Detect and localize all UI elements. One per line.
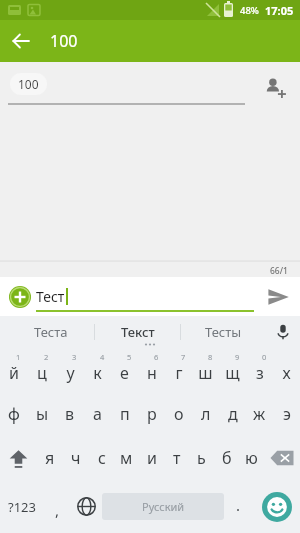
button[interactable]: о (165, 393, 192, 435)
button[interactable]: Add attachment (6, 283, 34, 311)
button[interactable]: 2 (28, 348, 56, 393)
staticText: ь (197, 447, 206, 469)
button[interactable]: Send (256, 277, 300, 316)
staticText: п (120, 403, 130, 425)
button[interactable]: б (214, 435, 239, 480)
staticText: 0 (262, 352, 267, 362)
button[interactable]: Текст (95, 316, 180, 348)
button[interactable]: 100 (10, 73, 47, 95)
button[interactable]: . (224, 480, 253, 533)
button[interactable]: ж (246, 393, 273, 435)
button[interactable]: 4 (84, 348, 111, 393)
staticText: б (222, 447, 232, 469)
button[interactable]: Change language (70, 480, 102, 533)
staticText: ?123 (8, 498, 36, 516)
button[interactable]: а (84, 393, 111, 435)
staticText: ж (253, 403, 266, 425)
button[interactable]: х (273, 348, 300, 393)
staticText: й (9, 362, 19, 384)
staticText: , (55, 500, 60, 520)
button[interactable]: 9 (219, 348, 246, 393)
staticText: . (236, 495, 241, 515)
staticText: я (45, 447, 55, 469)
button[interactable]: Backspace (264, 435, 300, 480)
button[interactable]: р (138, 393, 165, 435)
staticText: ы (36, 403, 49, 425)
button[interactable]: л (192, 393, 219, 435)
button[interactable]: д (219, 393, 246, 435)
button[interactable]: с (89, 435, 114, 480)
button[interactable]: 7 (165, 348, 192, 393)
button[interactable]: Русский (102, 493, 224, 520)
button[interactable]: э (273, 393, 300, 435)
staticText: а (93, 403, 102, 425)
staticText: 100 (18, 76, 39, 92)
staticText: 6 (154, 352, 159, 362)
staticText: с (98, 447, 106, 469)
staticText: к (93, 362, 102, 384)
button[interactable]: ь (189, 435, 214, 480)
button[interactable]: м (114, 435, 139, 480)
staticText: 3 (72, 352, 77, 362)
staticText: 66/1 (270, 265, 288, 277)
staticText: 2 (44, 352, 49, 362)
button[interactable]: 5 (111, 348, 138, 393)
staticText: г (175, 362, 183, 384)
staticText: ф (8, 403, 20, 425)
staticText: Текст (121, 323, 155, 341)
button[interactable]: и (139, 435, 164, 480)
staticText: Теста (34, 323, 68, 341)
button[interactable]: Shift (0, 435, 37, 480)
button[interactable]: Emoji (253, 480, 300, 533)
staticText: Тест (36, 287, 65, 306)
button[interactable]: Add contact (256, 69, 292, 105)
staticText: ш (198, 362, 213, 384)
staticText: у (66, 362, 75, 384)
staticText: л (201, 403, 211, 425)
button[interactable]: Тесты (181, 316, 266, 348)
button[interactable]: в (56, 393, 84, 435)
staticText: з (256, 362, 264, 384)
staticText: щ (225, 362, 240, 384)
staticText: 5 (127, 352, 132, 362)
button[interactable]: Back (0, 20, 42, 62)
staticText: 8 (208, 352, 213, 362)
button[interactable]: , (44, 480, 70, 533)
staticText: 9 (235, 352, 240, 362)
staticText: в (65, 403, 75, 425)
button[interactable]: 1 (0, 348, 28, 393)
button[interactable]: 3 (56, 348, 84, 393)
staticText: 4 (100, 352, 105, 362)
button[interactable]: Voice input (266, 316, 300, 348)
staticText: 100 (50, 30, 78, 52)
staticText: х (282, 362, 291, 384)
button[interactable]: 6 (138, 348, 165, 393)
staticText: т (173, 447, 181, 469)
staticText: 48% (240, 4, 259, 17)
staticText: Тесты (205, 323, 242, 341)
button[interactable]: я (37, 435, 63, 480)
button[interactable]: т (164, 435, 189, 480)
staticText: э (283, 403, 291, 425)
staticText: н (147, 362, 157, 384)
staticText: е (120, 362, 129, 384)
staticText: ю (245, 447, 258, 469)
button[interactable]: Теста (8, 316, 94, 348)
staticText: и (147, 447, 157, 469)
staticText: м (120, 447, 133, 469)
button[interactable]: ф (0, 393, 28, 435)
button[interactable]: ы (28, 393, 56, 435)
staticText: 17:05 (265, 3, 294, 18)
button[interactable]: 0 (246, 348, 273, 393)
button[interactable]: п (111, 393, 138, 435)
button[interactable]: ч (63, 435, 89, 480)
button[interactable]: ?123 (0, 480, 44, 533)
staticText: 7 (181, 352, 186, 362)
staticText: р (147, 403, 157, 425)
staticText: Русский (142, 499, 185, 514)
staticText: 1 (16, 352, 21, 362)
button[interactable]: Тест (36, 277, 256, 316)
button[interactable]: 8 (192, 348, 219, 393)
button[interactable]: ю (239, 435, 264, 480)
staticText: д (228, 403, 238, 425)
